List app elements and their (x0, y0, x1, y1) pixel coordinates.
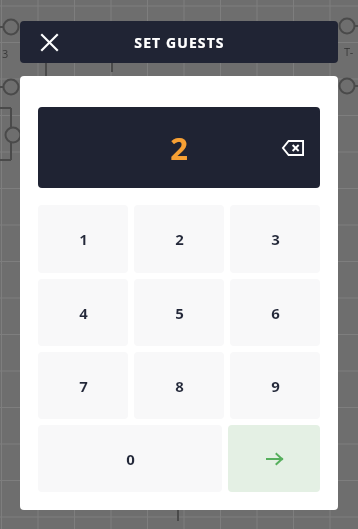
button[interactable]: Backspace (276, 131, 310, 165)
staticText: 2 (170, 127, 188, 169)
staticText: 0 (126, 449, 135, 469)
staticText: 4 (79, 303, 88, 323)
staticText: 1 (79, 229, 88, 249)
button[interactable]: 3 (230, 205, 320, 273)
staticText: SET GUESTS (134, 33, 225, 52)
staticText: 3 (271, 229, 280, 249)
staticText: 3 (2, 46, 9, 61)
button[interactable]: Close (32, 25, 66, 59)
button[interactable]: Confirm (228, 425, 320, 492)
staticText: 7 (79, 376, 88, 396)
staticText: 6 (271, 303, 280, 323)
button[interactable]: 7 (38, 352, 128, 419)
button[interactable]: 0 (38, 425, 222, 492)
staticText: 9 (271, 376, 280, 396)
staticText: 2 (175, 229, 184, 249)
staticText: 5 (175, 303, 184, 323)
button[interactable]: 5 (134, 279, 224, 346)
button[interactable]: 6 (230, 279, 320, 346)
button[interactable]: 1 (38, 205, 128, 273)
button[interactable]: 9 (230, 352, 320, 419)
button[interactable]: 4 (38, 279, 128, 346)
button[interactable]: 8 (134, 352, 224, 419)
button[interactable]: 2 (134, 205, 224, 273)
staticText: 8 (175, 376, 184, 396)
staticText: T- (344, 44, 354, 59)
